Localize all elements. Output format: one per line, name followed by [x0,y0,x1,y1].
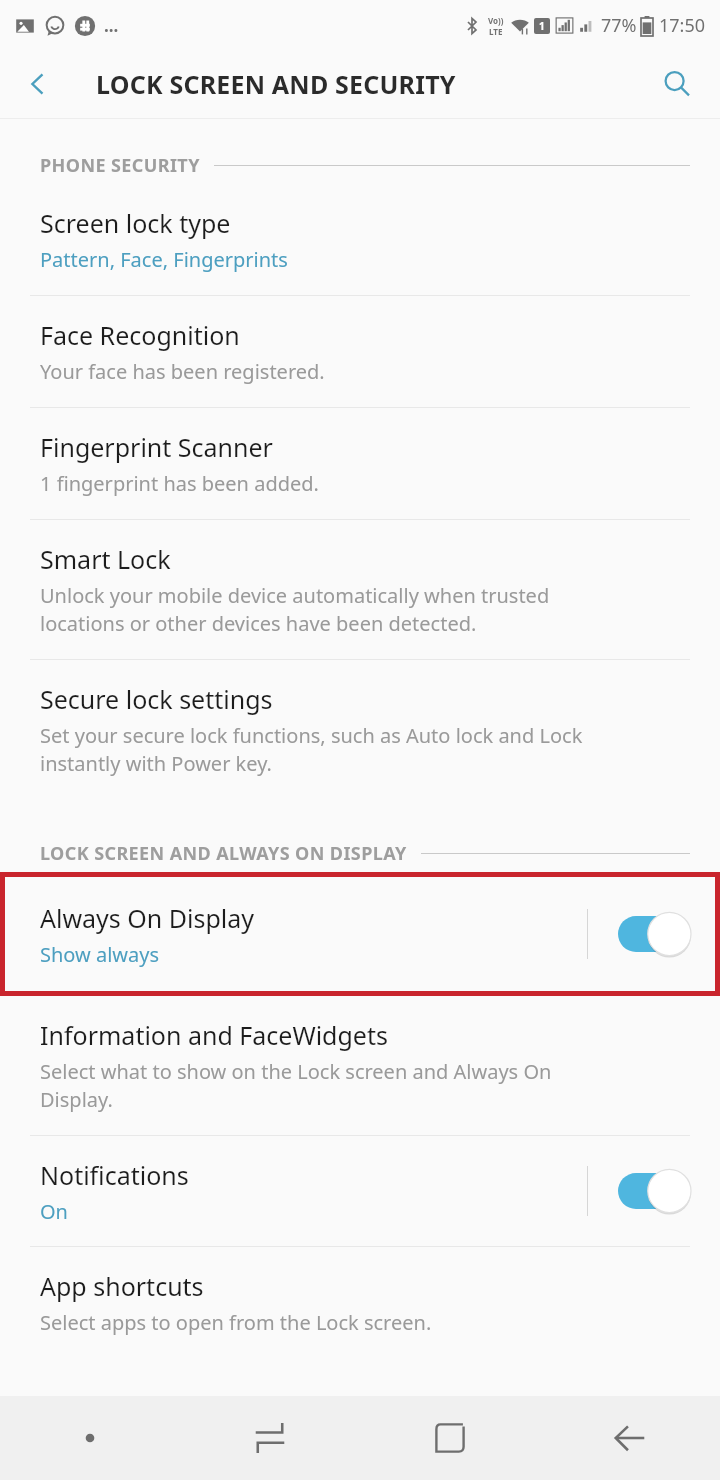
staticText: Screen lock type [40,206,231,240]
staticText: Vo)) [488,15,504,26]
button[interactable]: Toggle [618,1168,692,1214]
staticText: 1 fingerprint has been added. [40,470,319,497]
button[interactable]: Always On Display [0,872,720,996]
button[interactable]: Recents [180,1396,360,1480]
button[interactable]: Secure lock settings [0,660,720,799]
button[interactable]: Back [8,54,68,114]
staticText: Show always [40,941,160,968]
staticText: Face Recognition [40,318,240,352]
button[interactable]: Search [648,55,706,113]
button[interactable]: Toggle [618,911,692,957]
button[interactable]: Back [540,1396,720,1480]
staticText: Unlock your mobile device automatically … [40,582,550,637]
staticText: Smart Lock [40,542,171,576]
staticText: Set your secure lock functions, such as … [40,722,583,777]
button[interactable]: Face Recognition [0,296,720,407]
staticText: Information and FaceWidgets [40,1018,388,1052]
staticText: On [40,1198,68,1225]
staticText: PHONE SECURITY [40,153,200,178]
staticText: Secure lock settings [40,682,273,716]
staticText: 1 [539,19,545,33]
staticText: ... [104,14,119,37]
staticText: LTE [489,26,503,37]
button[interactable]: Screen lock type [0,184,720,295]
staticText: LOCK SCREEN AND ALWAYS ON DISPLAY [40,841,407,866]
staticText: LOCK SCREEN AND SECURITY [96,67,456,101]
button[interactable]: Fingerprint Scanner [0,408,720,519]
staticText: App shortcuts [40,1269,204,1303]
staticText: Always On Display [40,901,255,935]
button[interactable]: Home [360,1396,540,1480]
staticText: 77% [601,13,637,38]
button[interactable]: Information and FaceWidgets [0,996,720,1135]
staticText: Select apps to open from the Lock screen… [40,1309,432,1336]
staticText: Pattern, Face, Fingerprints [40,246,288,273]
button[interactable]: Keyboard indicator [0,1396,180,1480]
button[interactable]: Notifications [0,1136,720,1246]
staticText: Notifications [40,1158,189,1192]
staticText: 17:50 [659,13,706,38]
button[interactable]: App shortcuts [0,1247,720,1358]
button[interactable]: Smart Lock [0,520,720,659]
staticText: Fingerprint Scanner [40,430,273,464]
staticText: Select what to show on the Lock screen a… [40,1058,552,1113]
staticText: Your face has been registered. [40,358,325,385]
